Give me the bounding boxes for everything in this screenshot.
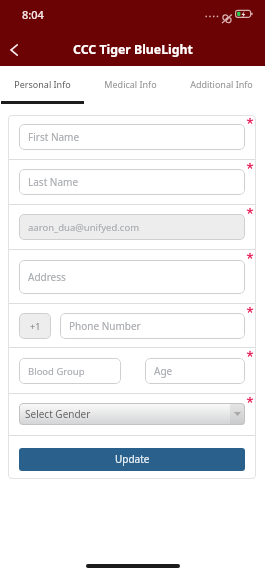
staticText: Update <box>115 452 150 466</box>
staticText: Additional Info <box>190 78 253 90</box>
button[interactable]: Select Gender <box>19 403 245 425</box>
button[interactable]: aaron_dua@unifyed.com <box>19 214 245 240</box>
button[interactable]: Medical Info <box>84 66 177 104</box>
staticText: Medical Info <box>104 78 157 90</box>
staticText: CCC Tiger BlueLight <box>73 41 193 58</box>
staticText: +1 <box>30 320 41 332</box>
button[interactable]: Additional Info <box>177 66 265 104</box>
button[interactable]: Back <box>0 33 28 66</box>
button[interactable]: +1 <box>19 313 51 339</box>
staticText: First Name <box>28 130 80 144</box>
staticText: aaron_dua@unifyed.com <box>28 221 140 234</box>
staticText: Blood Group <box>28 365 85 378</box>
button[interactable]: Last Name <box>19 169 245 195</box>
staticText: 8:04 <box>22 7 44 22</box>
staticText: Last Name <box>28 175 79 189</box>
button[interactable]: Update <box>19 448 245 471</box>
staticText: Personal Info <box>14 78 71 90</box>
button[interactable]: Blood Group <box>19 358 121 384</box>
staticText: Select Gender <box>25 407 91 421</box>
button[interactable]: Age <box>145 358 245 384</box>
button[interactable]: First Name <box>19 124 245 150</box>
staticText: Address <box>28 270 66 284</box>
staticText: Age <box>154 364 173 378</box>
button[interactable]: Phone Number <box>60 313 245 339</box>
button[interactable]: Personal Info <box>0 66 84 104</box>
staticText: Phone Number <box>69 319 141 333</box>
button[interactable]: Address <box>19 260 245 294</box>
